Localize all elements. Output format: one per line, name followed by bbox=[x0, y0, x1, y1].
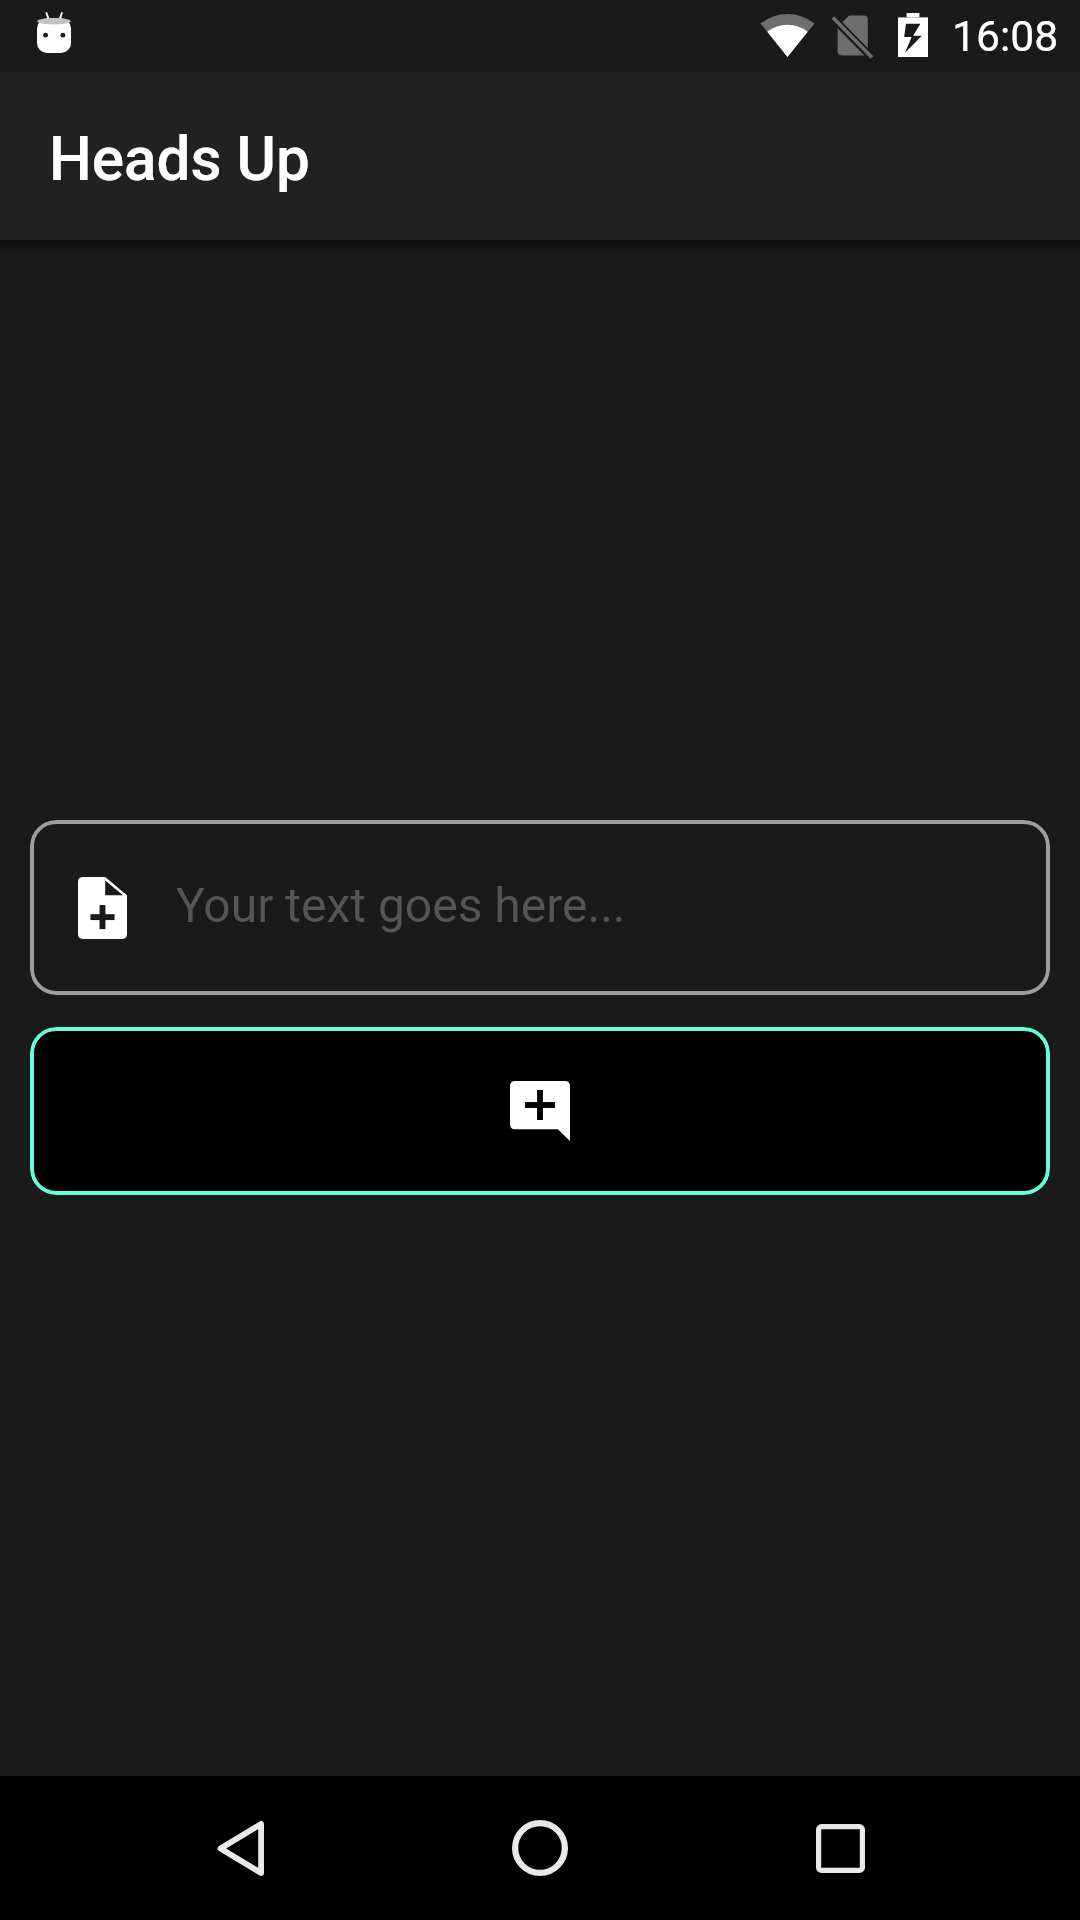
button[interactable]: Back bbox=[170, 1776, 310, 1920]
button[interactable]: Your text goes here... bbox=[30, 820, 1050, 995]
staticText: Your text goes here... bbox=[176, 877, 626, 933]
staticText: 16:08 bbox=[952, 11, 1059, 61]
button[interactable]: Add note bbox=[30, 1027, 1050, 1195]
button[interactable]: Recents bbox=[770, 1776, 910, 1920]
staticText: Heads Up bbox=[49, 124, 310, 195]
button[interactable]: Home bbox=[470, 1776, 610, 1920]
